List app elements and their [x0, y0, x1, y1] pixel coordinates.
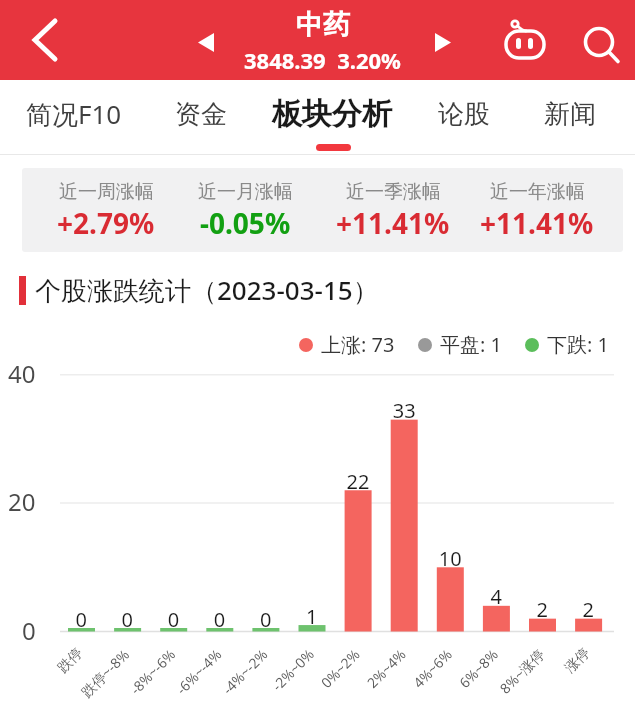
staticText: +11.41% — [336, 204, 450, 242]
button[interactable] — [500, 12, 550, 66]
staticText: 近一季涨幅 — [346, 180, 441, 204]
button[interactable]: 板块分析 — [262, 80, 402, 148]
staticText: 中药 — [296, 8, 350, 42]
staticText: 近一周涨幅 — [59, 180, 154, 204]
staticText: 简况F10 — [26, 96, 122, 132]
button[interactable]: 简况F10 — [14, 80, 134, 148]
staticText: 板块分析 — [272, 95, 392, 133]
button[interactable]: 资金 — [166, 80, 236, 148]
staticText: 平盘: 1 — [440, 331, 502, 358]
staticText: 3848.39 3.20% — [244, 45, 401, 75]
button[interactable] — [427, 25, 459, 59]
staticText: -0.05% — [200, 204, 291, 242]
staticText: 资金 — [175, 98, 227, 131]
button[interactable]: 论股 — [429, 80, 499, 148]
staticText: 近一年涨幅 — [490, 180, 585, 204]
staticText: 近一月涨幅 — [198, 180, 293, 204]
staticText: +11.41% — [480, 204, 594, 242]
staticText: 新闻 — [544, 98, 596, 131]
button[interactable] — [190, 25, 222, 59]
button[interactable] — [20, 8, 68, 72]
button[interactable] — [578, 16, 624, 66]
staticText: +2.79% — [57, 204, 155, 242]
staticText: 个股涨跌统计（2023-03-15） — [35, 272, 379, 308]
button[interactable]: 新闻 — [535, 80, 605, 148]
staticText: 下跌: 1 — [547, 331, 609, 358]
staticText: 上涨: 73 — [321, 331, 395, 358]
staticText: 论股 — [438, 98, 490, 131]
